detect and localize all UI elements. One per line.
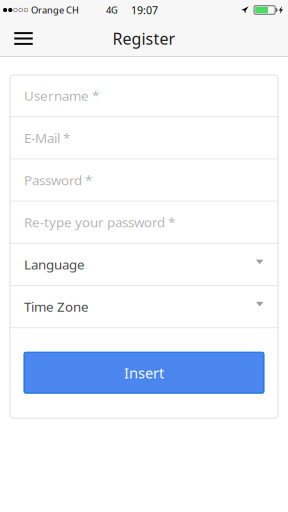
staticText: Username * <box>24 87 99 104</box>
staticText: 19:07 <box>131 3 158 17</box>
staticText: 4G <box>106 4 118 16</box>
button[interactable]: Time Zone <box>10 286 278 327</box>
staticText: E-Mail * <box>24 129 70 147</box>
button[interactable]: Language <box>10 244 278 285</box>
staticText: Orange CH <box>31 4 79 16</box>
staticText: Time Zone <box>24 298 89 315</box>
staticText: Insert <box>124 363 164 382</box>
button[interactable]: Insert <box>24 352 264 393</box>
button[interactable]: Username * <box>10 75 278 116</box>
staticText: Password * <box>24 171 92 189</box>
button[interactable]: Menu <box>5 20 42 57</box>
staticText: Language <box>24 255 85 273</box>
button[interactable]: E-Mail * <box>10 117 278 158</box>
staticText: Register <box>112 28 175 49</box>
button[interactable]: Password * <box>10 159 278 201</box>
staticText: Re-type your password * <box>24 213 175 231</box>
button[interactable]: Re-type your password * <box>10 202 278 243</box>
